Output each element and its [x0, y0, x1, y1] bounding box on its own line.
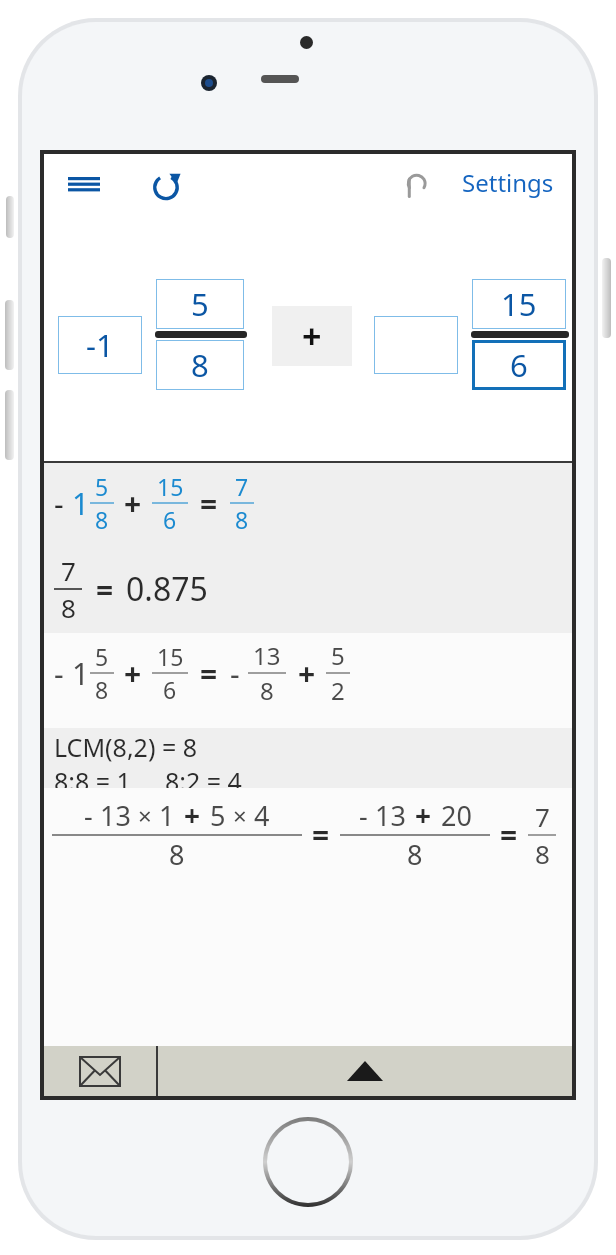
- staticText: =: [200, 483, 218, 524]
- staticText: 5: [210, 797, 226, 834]
- button[interactable]: +: [272, 306, 352, 366]
- staticText: 13: [375, 797, 406, 834]
- button[interactable]: -: [44, 788, 572, 888]
- button[interactable]: Undo: [390, 162, 440, 208]
- staticText: 6: [510, 344, 528, 386]
- staticText: 8: [95, 504, 109, 535]
- button[interactable]: Scroll up: [158, 1046, 572, 1096]
- staticText: =: [312, 814, 330, 855]
- staticText: +: [184, 796, 201, 834]
- staticText: 8:8 = 1: [54, 764, 131, 790]
- staticText: 5: [95, 471, 109, 502]
- button[interactable]: Settings: [454, 160, 562, 205]
- staticText: 5: [331, 639, 345, 672]
- button[interactable]: Menu: [58, 162, 110, 208]
- staticText: 13: [253, 639, 281, 672]
- staticText: =: [200, 653, 218, 694]
- staticText: 8: [61, 590, 76, 625]
- staticText: +: [415, 796, 432, 834]
- staticText: 5: [95, 641, 109, 672]
- staticText: 20: [441, 797, 472, 834]
- button[interactable]: Empty input field: [374, 316, 458, 374]
- button[interactable]: -1: [58, 316, 142, 374]
- button[interactable]: 5: [156, 279, 244, 329]
- staticText: 8: [95, 674, 109, 705]
- staticText: 15: [157, 471, 184, 502]
- staticText: 8: [235, 504, 249, 535]
- staticText: 6: [163, 674, 177, 705]
- staticText: 8:2 = 4: [165, 764, 242, 790]
- staticText: 5: [191, 283, 209, 325]
- staticText: -: [84, 797, 93, 834]
- staticText: 4: [254, 797, 270, 834]
- button[interactable]: -: [44, 463, 572, 633]
- staticText: =: [96, 569, 114, 610]
- button[interactable]: 6: [472, 340, 566, 390]
- staticText: 8: [169, 836, 185, 873]
- staticText: 1: [72, 483, 90, 524]
- staticText: -1: [86, 324, 114, 366]
- staticText: 8: [260, 674, 274, 707]
- staticText: 1: [159, 797, 175, 834]
- staticText: 8: [535, 836, 550, 871]
- staticText: ×: [138, 799, 152, 832]
- staticText: 13: [100, 797, 131, 834]
- staticText: =: [500, 814, 518, 855]
- staticText: 1: [72, 653, 90, 694]
- staticText: LCM(8,2) = 8: [54, 730, 197, 764]
- staticText: -: [230, 653, 240, 694]
- staticText: +: [298, 653, 316, 694]
- staticText: -: [54, 483, 64, 524]
- button[interactable]: 8: [156, 340, 244, 390]
- button[interactable]: 15: [472, 279, 566, 329]
- staticText: 2: [331, 674, 345, 707]
- staticText: 15: [157, 641, 184, 672]
- staticText: 6: [163, 504, 177, 535]
- staticText: -: [359, 797, 368, 834]
- button[interactable]: LCM(8,2) = 8: [44, 728, 572, 788]
- staticText: 8: [407, 836, 423, 873]
- staticText: +: [302, 313, 322, 359]
- staticText: -: [54, 653, 64, 694]
- button[interactable]: Email result: [44, 1046, 156, 1096]
- staticText: 7: [535, 799, 550, 834]
- staticText: ×: [233, 799, 247, 832]
- staticText: 7: [235, 471, 249, 502]
- staticText: 7: [61, 553, 76, 588]
- staticText: 0.875: [126, 567, 208, 611]
- button[interactable]: -: [44, 633, 572, 728]
- staticText: 8: [191, 344, 209, 386]
- button[interactable]: Reset: [140, 160, 192, 210]
- staticText: Settings: [462, 166, 554, 199]
- staticText: 15: [501, 283, 537, 325]
- staticText: +: [124, 653, 142, 694]
- staticText: +: [124, 483, 142, 524]
